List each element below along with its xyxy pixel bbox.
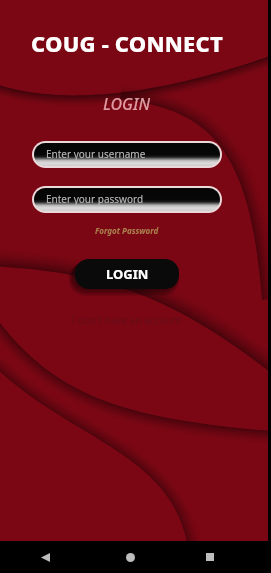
- button[interactable]: Forgot Password: [95, 225, 159, 236]
- button[interactable]: LOGIN: [75, 259, 179, 289]
- button[interactable]: Home: [90, 541, 170, 573]
- button[interactable]: Enter your username: [34, 143, 220, 166]
- staticText: Enter your username: [46, 147, 146, 161]
- button[interactable]: I don't have an account: [72, 313, 182, 327]
- staticText: Enter your password: [46, 192, 144, 206]
- button[interactable]: Enter your password: [34, 188, 220, 211]
- button[interactable]: Recents: [170, 541, 250, 573]
- staticText: COUG - CONNECT: [31, 28, 223, 58]
- staticText: LOGIN: [103, 93, 151, 115]
- button[interactable]: Back: [0, 541, 90, 573]
- staticText: LOGIN: [106, 265, 149, 283]
